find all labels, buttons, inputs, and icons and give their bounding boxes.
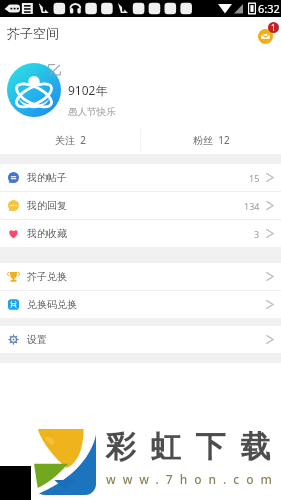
button[interactable]: 关注 2 — [0, 126, 140, 154]
staticText: 1 — [271, 22, 276, 33]
staticText: 粉丝 12 — [193, 133, 230, 147]
staticText: 设置 — [27, 333, 47, 346]
staticText: www.7hon.com — [106, 471, 279, 487]
staticText: 关注 2 — [55, 133, 86, 147]
button[interactable]: 9102年 — [0, 54, 281, 126]
staticText: 9102年 — [68, 82, 108, 98]
button[interactable]: 粉丝 12 — [141, 126, 281, 154]
staticText: 6:32 — [258, 1, 280, 16]
staticText: 愚人节快乐 — [68, 106, 116, 118]
staticText: 134 — [244, 200, 260, 212]
button[interactable]: 设置 — [0, 326, 281, 353]
staticText: 我的回复 — [27, 199, 67, 212]
button[interactable]: 我的帖子 — [0, 164, 281, 191]
staticText: 我的收藏 — [27, 227, 67, 240]
staticText: 15 — [249, 172, 260, 184]
button[interactable]: 我的回复 — [0, 192, 281, 219]
staticText: 芥子空间 — [7, 25, 59, 41]
staticText: 3 — [254, 228, 260, 240]
button[interactable]: 芥子兑换 — [0, 263, 281, 290]
staticText: 彩虹下载 — [98, 428, 278, 466]
button[interactable]: Messages — [256, 22, 280, 46]
staticText: 兑换码兑换 — [27, 298, 77, 311]
staticText: 我的帖子 — [27, 171, 67, 184]
button[interactable]: 我的收藏 — [0, 220, 281, 247]
staticText: 芥子兑换 — [27, 270, 67, 283]
button[interactable]: 兑换码兑换 — [0, 291, 281, 318]
